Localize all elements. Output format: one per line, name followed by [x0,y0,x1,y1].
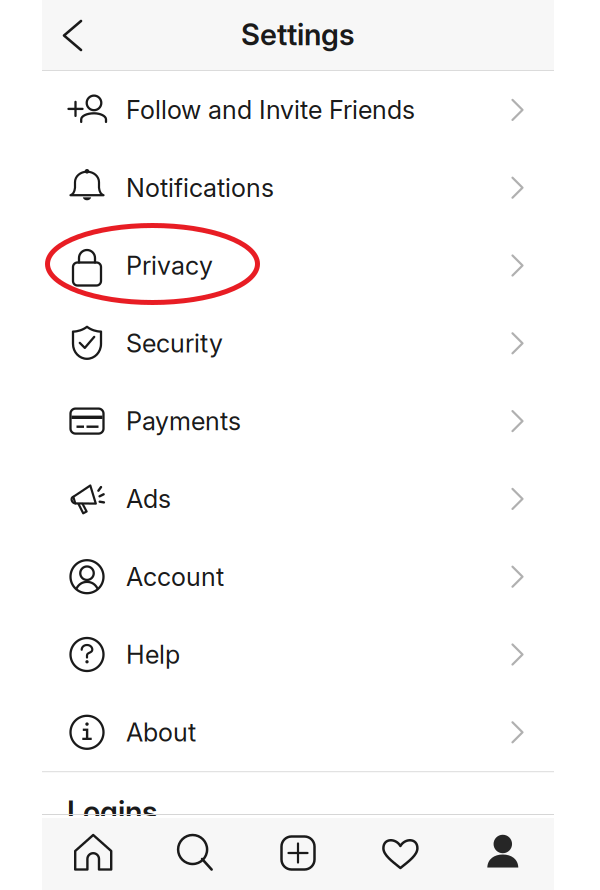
staticText: Payments [126,406,241,436]
button[interactable]: Account [42,538,554,616]
button[interactable]: About [42,693,554,771]
button[interactable]: Activity [349,817,452,889]
button[interactable]: Profile [452,817,554,889]
button[interactable]: Notifications [42,149,554,227]
staticText: Account [126,561,224,592]
button[interactable]: Create [247,817,349,889]
staticText: Settings [241,17,355,52]
staticText: Follow and Invite Friends [126,95,415,125]
button[interactable]: Back [42,4,104,66]
staticText: Security [126,328,223,359]
staticText: Logins [67,794,158,830]
staticText: About [126,717,196,748]
button[interactable]: Ads [42,460,554,538]
staticText: Ads [126,484,171,514]
button[interactable]: Privacy [42,227,554,304]
button[interactable]: Payments [42,382,554,460]
staticText: Privacy [126,250,213,281]
button[interactable]: Help [42,616,554,693]
staticText: Help [126,639,180,670]
button[interactable]: Follow and Invite Friends [42,71,554,149]
button[interactable]: Search [144,817,247,889]
button[interactable]: Security [42,304,554,382]
button[interactable]: Home [42,817,144,889]
staticText: Notifications [126,172,274,203]
